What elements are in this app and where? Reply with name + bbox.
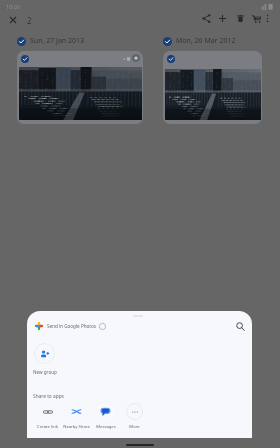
button[interactable]: Search xyxy=(233,319,248,334)
button[interactable]: Close xyxy=(4,11,21,28)
button[interactable]: More options xyxy=(260,11,274,25)
button[interactable]: Photo Mon, 26 Mar 2012 xyxy=(163,51,262,124)
staticText: 2 xyxy=(27,15,32,26)
button[interactable]: Nearby Share xyxy=(62,402,91,430)
button[interactable]: New group xyxy=(27,343,62,375)
button[interactable]: Archive xyxy=(249,11,263,25)
staticText: Nearby Share xyxy=(63,424,90,430)
staticText: Create link xyxy=(37,424,58,430)
staticText: Mon, 26 Mar 2012 xyxy=(176,36,236,46)
staticText: More xyxy=(129,424,140,430)
button[interactable]: Add to album xyxy=(215,11,229,25)
staticText: Send in Google Photos xyxy=(47,323,96,329)
button[interactable]: Create link xyxy=(33,402,62,430)
button[interactable]: Messages xyxy=(91,402,120,430)
staticText: New group xyxy=(33,369,57,375)
button[interactable]: Delete xyxy=(233,11,247,25)
button[interactable]: Send in Google Photos xyxy=(35,319,106,333)
button[interactable]: More xyxy=(120,402,149,430)
staticText: Messages xyxy=(96,424,116,430)
button[interactable]: Photo Sun, 27 Jan 2013 xyxy=(17,51,143,124)
staticText: 10:00 xyxy=(6,3,21,10)
staticText: Share to apps xyxy=(33,393,64,400)
button[interactable]: Share xyxy=(199,11,213,25)
staticText: Sun, 27 Jan 2013 xyxy=(30,36,85,46)
